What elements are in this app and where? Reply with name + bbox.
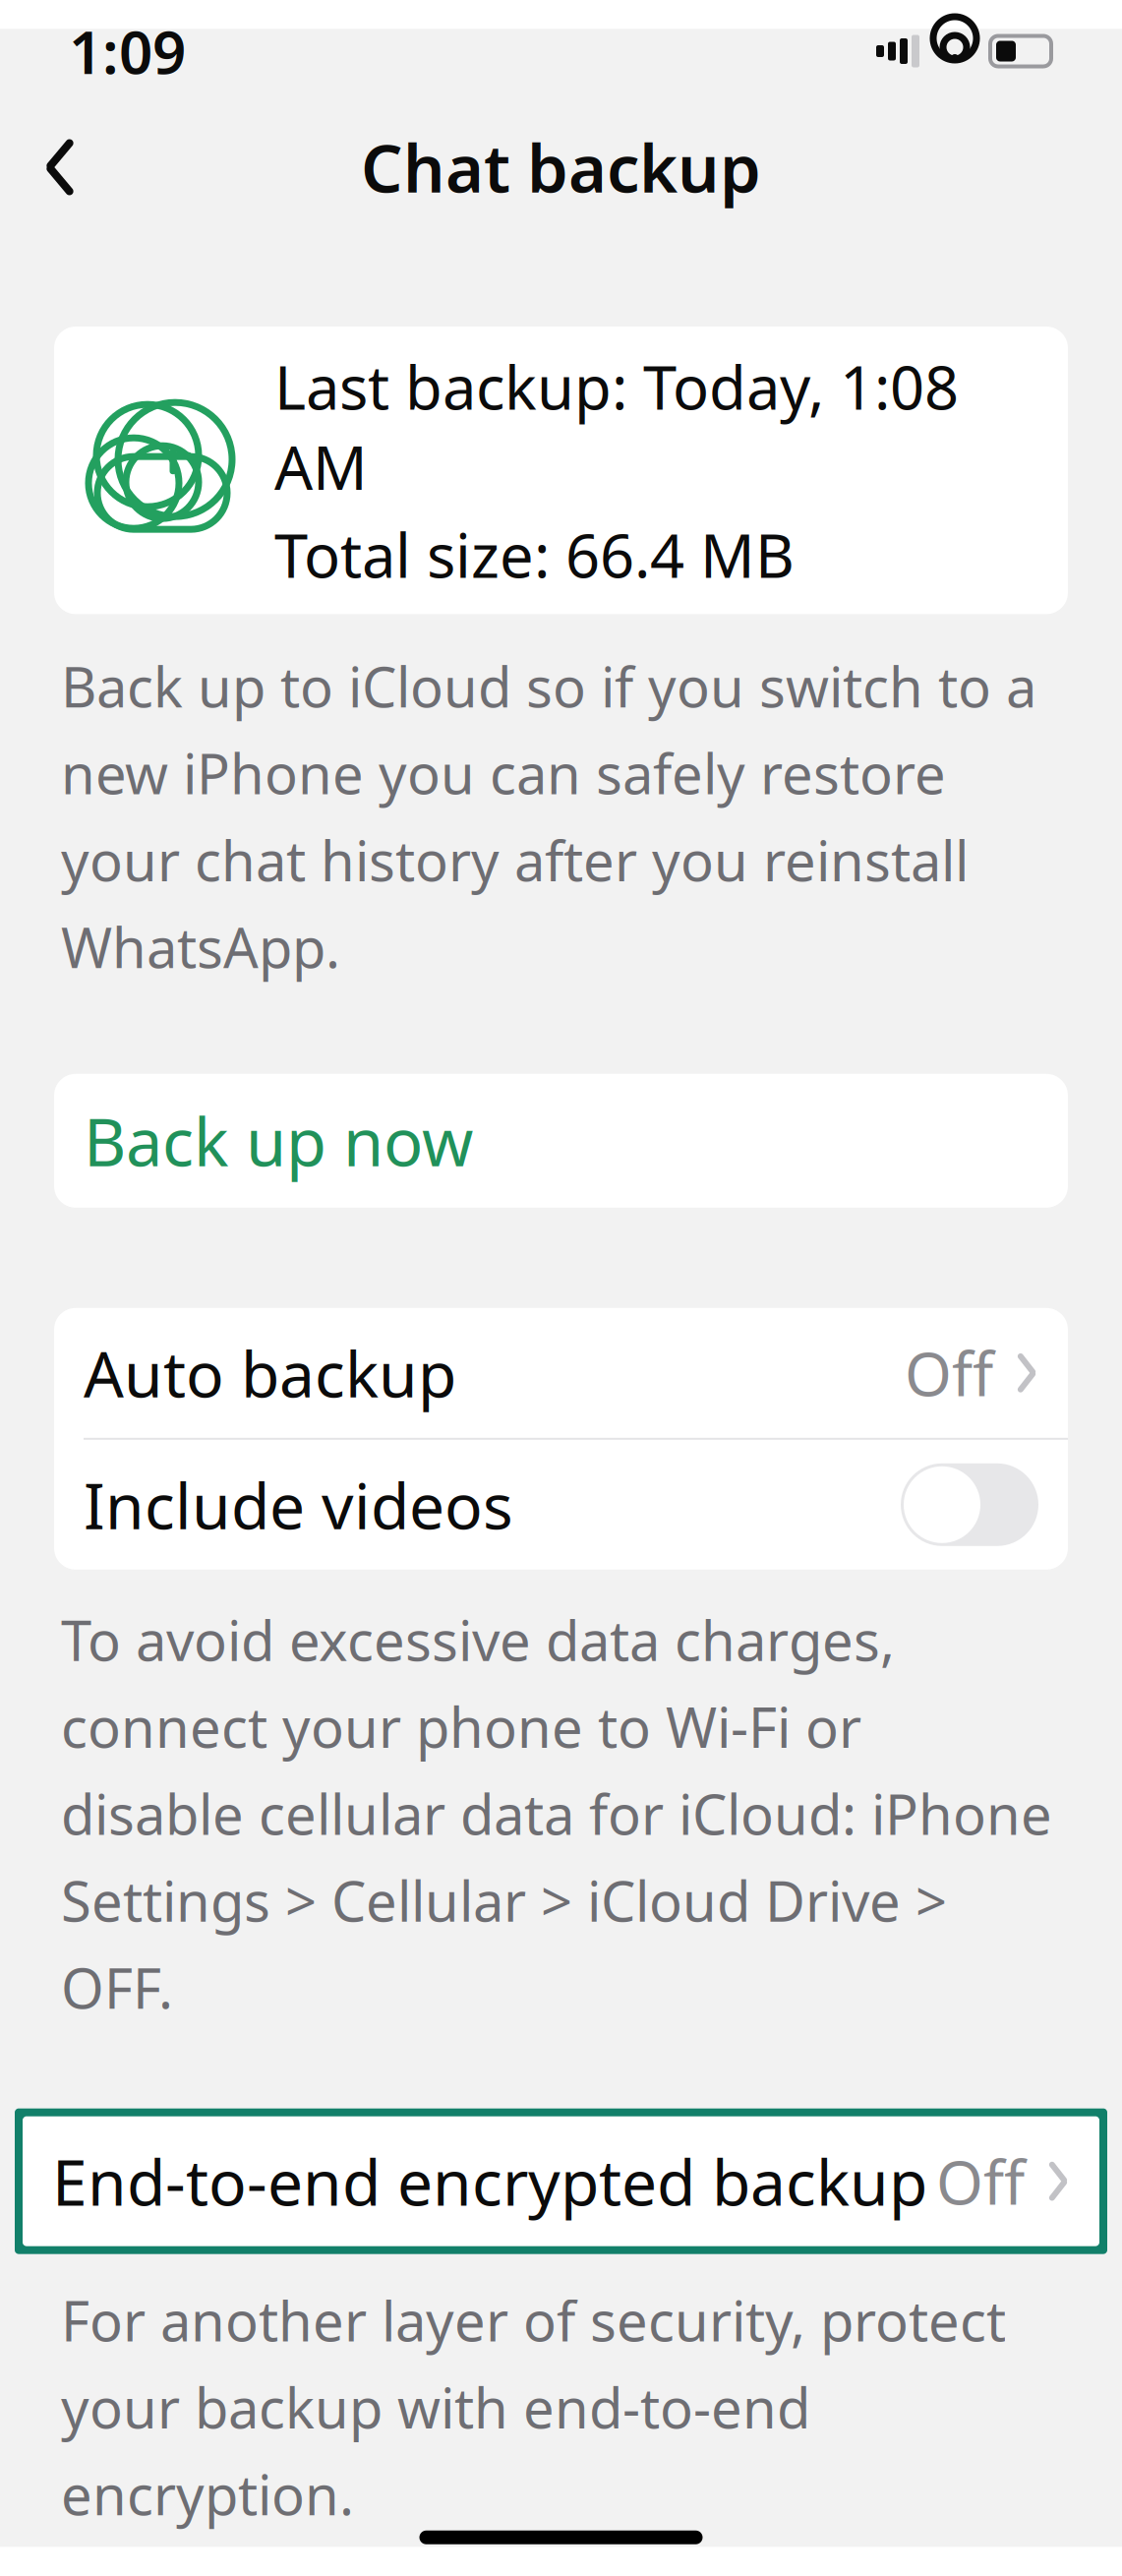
button[interactable]: Auto backup <box>54 1308 1068 1438</box>
staticText: For another layer of security, protect y… <box>61 2283 1006 2530</box>
staticText: Auto backup <box>84 1331 456 1415</box>
staticText: 1:09 <box>69 12 186 90</box>
staticText: Off <box>905 1333 993 1413</box>
staticText: End-to-end encrypted backup <box>52 2139 927 2223</box>
staticText: Back up to iCloud so if you switch to a … <box>61 649 1036 983</box>
staticText: Include videos <box>84 1463 513 1546</box>
button[interactable]: End-to-end encrypted backup <box>23 2116 1099 2246</box>
staticText: To avoid excessive data charges, connect… <box>61 1603 1052 2024</box>
button[interactable]: Back up now <box>54 1074 1068 1208</box>
staticText: Back up now <box>84 1097 473 1184</box>
button[interactable]: Include videos <box>54 1440 1068 1570</box>
staticText: Total size: 66.4 MB <box>274 514 795 594</box>
staticText: Off <box>936 2141 1025 2221</box>
staticText: Last backup: Today, 1:08 AM <box>274 346 959 506</box>
button[interactable]: Back <box>26 128 94 207</box>
staticText: Chat backup <box>361 124 761 211</box>
